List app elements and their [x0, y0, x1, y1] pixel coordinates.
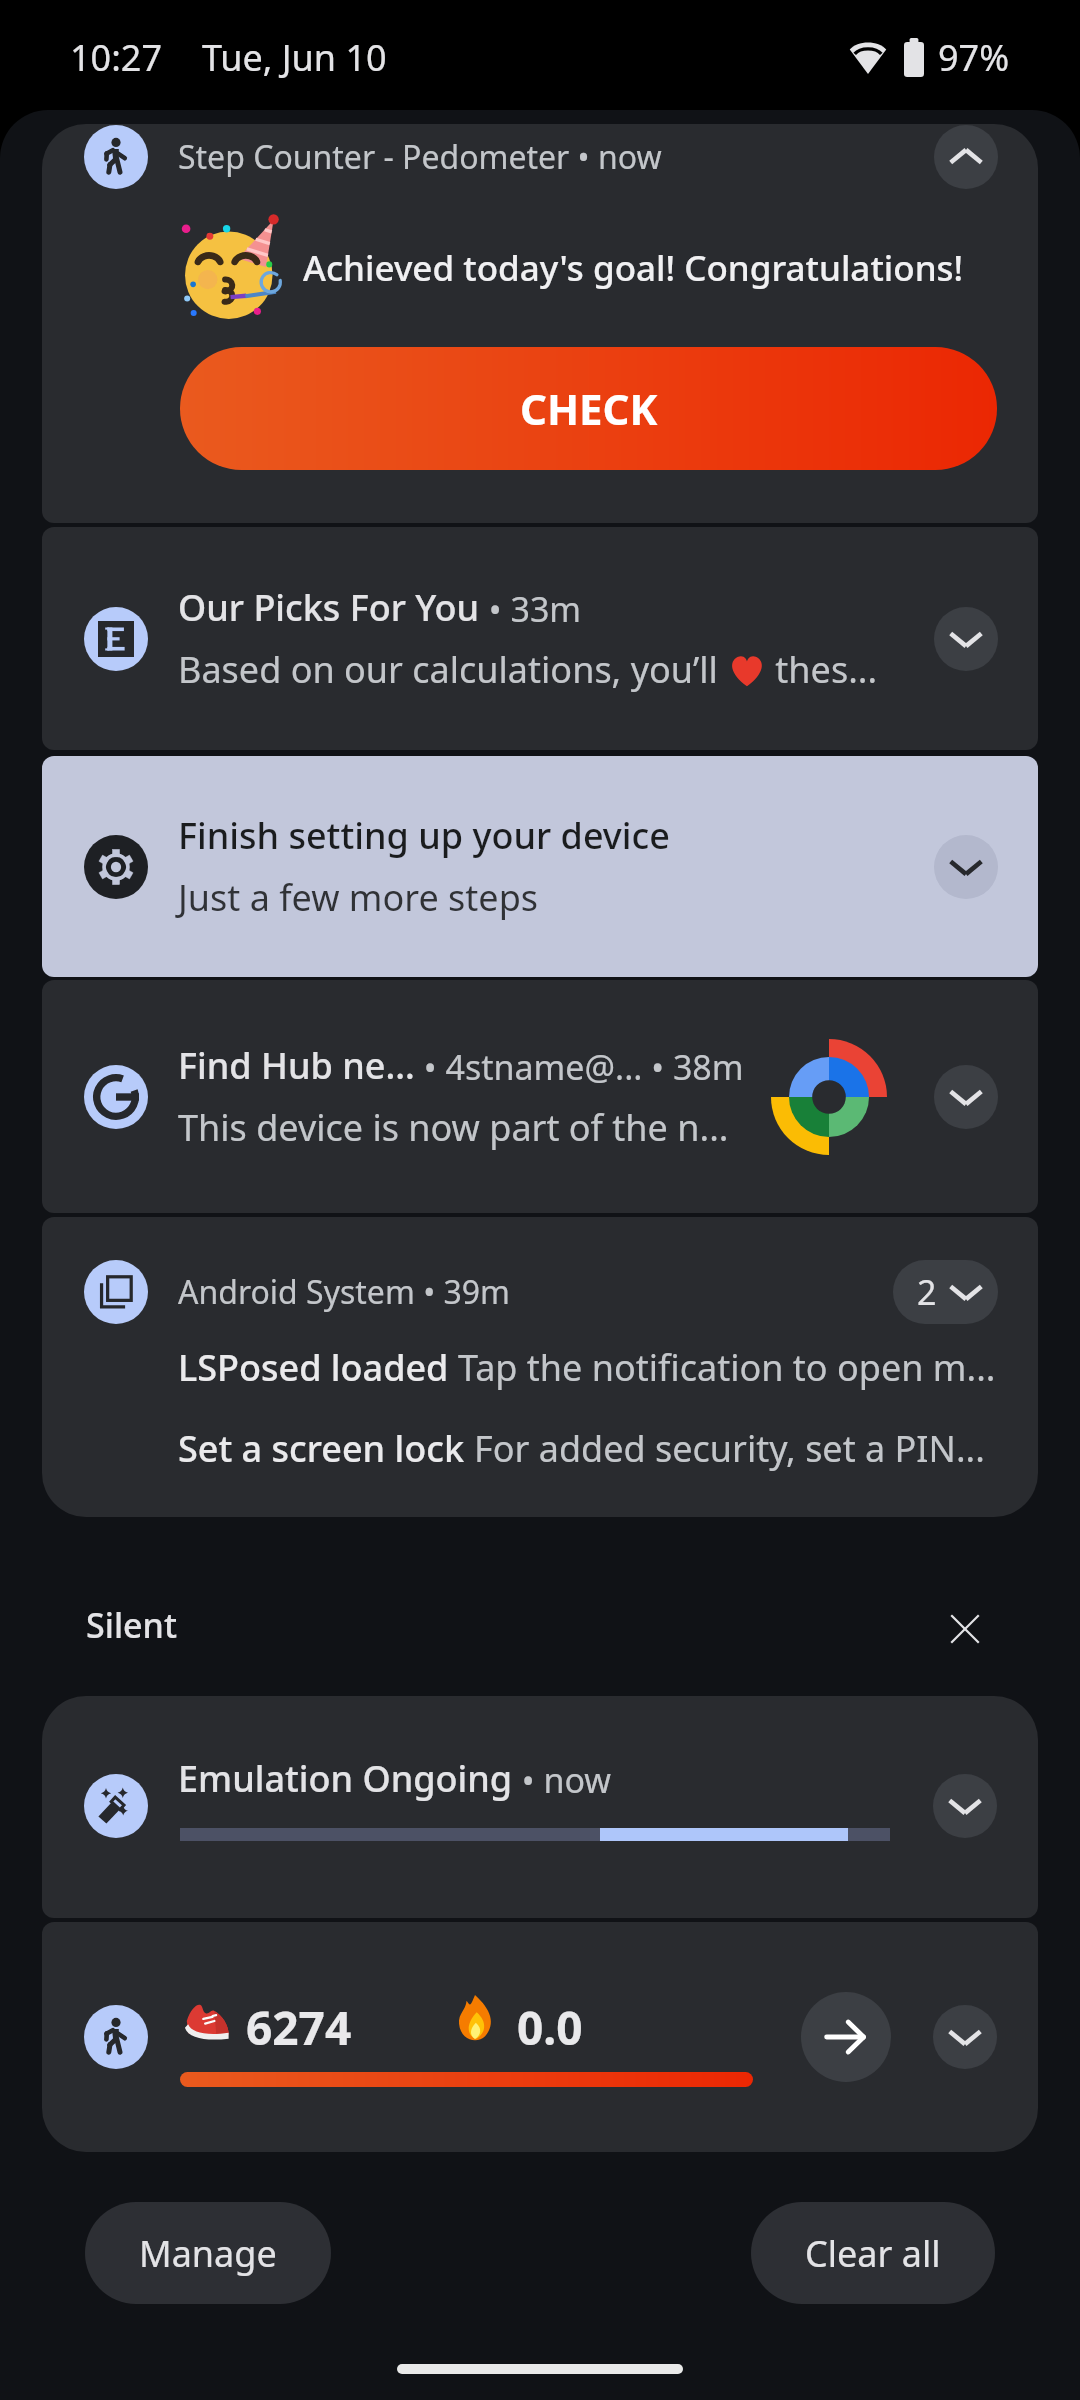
- button[interactable]: CHECK: [180, 347, 997, 470]
- button[interactable]: 6274: [42, 1922, 1038, 2152]
- staticText: • now: [513, 1757, 612, 1803]
- staticText: Step Counter - Pedometer • now: [178, 135, 662, 179]
- staticText: Our Picks For You: [178, 583, 480, 632]
- staticText: thes...: [766, 645, 878, 694]
- button[interactable]: Open Step Counter: [801, 1992, 891, 2082]
- button[interactable]: Expand group of 2 notifications: [893, 1260, 998, 1324]
- button[interactable]: Our Picks For You: [42, 527, 1038, 750]
- staticText: 6274: [246, 1996, 352, 2059]
- staticText: Clear all: [805, 2229, 941, 2278]
- staticText: Tue, Jun 10: [202, 33, 387, 82]
- button[interactable]: Android System • 39m: [42, 1217, 1038, 1517]
- button[interactable]: Expand notification: [934, 835, 998, 899]
- button[interactable]: Step Counter - Pedometer • now: [42, 124, 1038, 523]
- staticText: 97%: [938, 33, 1010, 82]
- button[interactable]: Expand notification: [933, 1774, 997, 1838]
- button[interactable]: Expand notification: [933, 2005, 997, 2069]
- staticText: • 4stname@... • 38m: [415, 1044, 744, 1090]
- staticText: Find Hub ne...: [178, 1041, 415, 1090]
- staticText: • 33m: [480, 586, 582, 632]
- staticText: For added security, set a PIN...: [474, 1424, 985, 1473]
- button[interactable]: Clear silent notifications: [925, 1589, 1005, 1669]
- button[interactable]: Expand notification: [934, 607, 998, 671]
- staticText: Manage: [139, 2229, 277, 2278]
- staticText: Tap the notification to open m...: [458, 1343, 996, 1392]
- staticText: This device is now part of the n...: [178, 1103, 729, 1152]
- staticText: Android System • 39m: [178, 1270, 511, 1314]
- staticText: LSPosed loaded: [178, 1343, 458, 1392]
- staticText: Set a screen lock: [178, 1424, 474, 1473]
- button[interactable]: Expand notification: [934, 1065, 998, 1129]
- staticText: Finish setting up your device: [178, 811, 670, 860]
- button[interactable]: Clear all: [751, 2202, 995, 2304]
- button[interactable]: Find Hub ne...: [42, 980, 1038, 1213]
- staticText: Just a few more steps: [178, 873, 539, 922]
- staticText: 10:27: [70, 33, 163, 82]
- button[interactable]: Finish setting up your device: [42, 756, 1038, 977]
- staticText: 0.0: [517, 1996, 583, 2059]
- button[interactable]: Manage: [85, 2202, 331, 2304]
- staticText: 2: [917, 1269, 937, 1315]
- staticText: Achieved today's goal! Congratulations!: [303, 244, 964, 292]
- staticText: Silent: [86, 1602, 177, 1648]
- button[interactable]: Emulation Ongoing: [42, 1696, 1038, 1918]
- staticText: CHECK: [520, 380, 658, 437]
- button[interactable]: Collapse notification: [934, 125, 998, 189]
- staticText: Emulation Ongoing: [178, 1754, 513, 1803]
- staticText: Based on our calculations, you’ll: [178, 645, 728, 694]
